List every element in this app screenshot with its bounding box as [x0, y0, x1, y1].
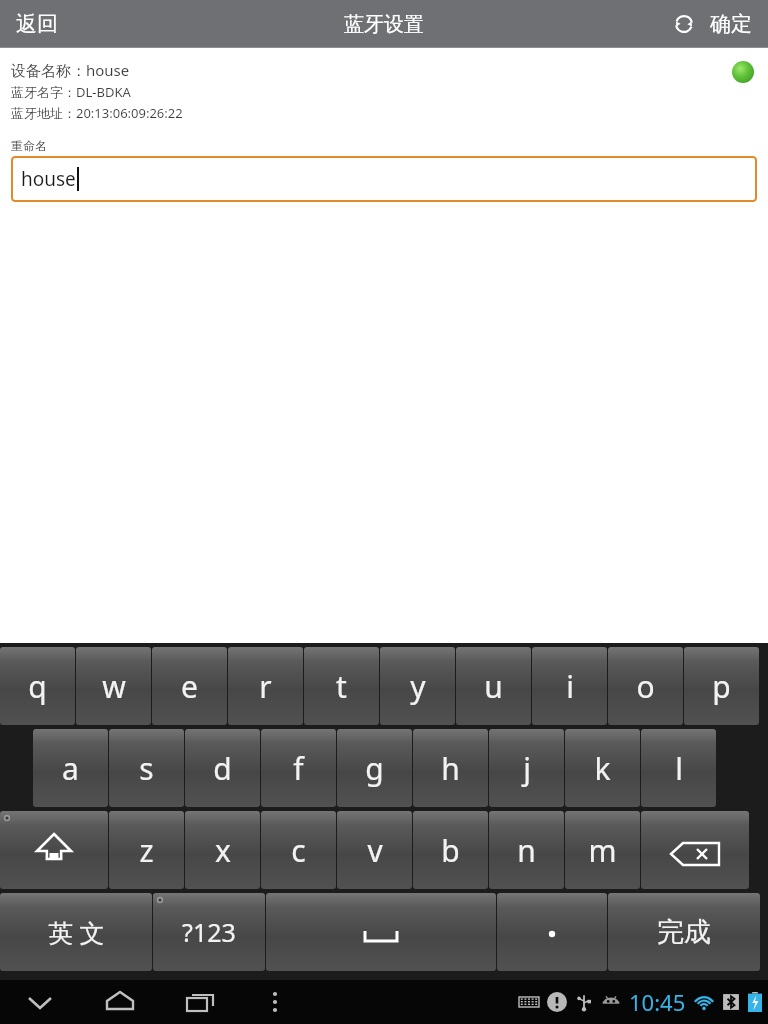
- button[interactable]: d: [185, 729, 260, 807]
- staticText: x: [215, 830, 231, 871]
- staticText: e: [181, 666, 198, 707]
- staticText: a: [62, 748, 79, 789]
- button[interactable]: m: [565, 811, 640, 889]
- button[interactable]: 返回: [0, 0, 120, 48]
- staticText: m: [588, 830, 617, 871]
- staticText: 重命名: [11, 138, 47, 153]
- button[interactable]: l: [641, 729, 716, 807]
- staticText: ?123: [182, 915, 236, 949]
- button[interactable]: 确定: [706, 0, 768, 48]
- button[interactable]: e: [152, 647, 227, 725]
- button[interactable]: z: [109, 811, 184, 889]
- button[interactable]: b: [413, 811, 488, 889]
- button[interactable]: r: [228, 647, 303, 725]
- button[interactable]: Delete: [641, 811, 749, 889]
- staticText: j: [523, 748, 531, 789]
- staticText: n: [517, 830, 536, 871]
- button[interactable]: Recent apps: [160, 980, 240, 1024]
- button[interactable]: n: [489, 811, 564, 889]
- staticText: l: [675, 748, 683, 789]
- staticText: d: [213, 748, 232, 789]
- staticText: o: [636, 666, 655, 707]
- staticText: 确定: [710, 11, 752, 37]
- staticText: r: [259, 666, 272, 707]
- staticText: i: [566, 666, 574, 707]
- staticText: w: [102, 666, 126, 707]
- staticText: 蓝牙地址：20:13:06:09:26:22: [11, 104, 183, 122]
- button[interactable]: f: [261, 729, 336, 807]
- staticText: 蓝牙名字：DL-BDKA: [11, 83, 131, 101]
- button[interactable]: y: [380, 647, 455, 725]
- staticText: b: [441, 830, 460, 871]
- staticText: 设备名称：house: [11, 60, 130, 80]
- button[interactable]: o: [608, 647, 683, 725]
- button[interactable]: q: [0, 647, 75, 725]
- button[interactable]: 英 文: [0, 893, 152, 971]
- staticText: p: [712, 666, 731, 707]
- button[interactable]: a: [33, 729, 108, 807]
- button[interactable]: j: [489, 729, 564, 807]
- staticText: 蓝牙设置: [344, 12, 424, 37]
- staticText: v: [367, 830, 383, 871]
- button[interactable]: h: [413, 729, 488, 807]
- staticText: house: [21, 166, 76, 192]
- staticText: y: [410, 666, 426, 707]
- staticText: c: [291, 830, 306, 871]
- staticText: h: [441, 748, 460, 789]
- button[interactable]: x: [185, 811, 260, 889]
- button[interactable]: v: [337, 811, 412, 889]
- staticText: 完成: [657, 915, 711, 949]
- staticText: k: [594, 748, 611, 789]
- staticText: u: [484, 666, 503, 707]
- button[interactable]: Home: [80, 980, 160, 1024]
- button[interactable]: Space: [266, 893, 496, 971]
- staticText: t: [336, 666, 347, 707]
- button[interactable]: Hide keyboard: [0, 980, 80, 1024]
- button[interactable]: 完成: [608, 893, 760, 971]
- button[interactable]: u: [456, 647, 531, 725]
- button[interactable]: house: [11, 156, 757, 202]
- staticText: 英 文: [48, 915, 105, 949]
- staticText: z: [139, 830, 154, 871]
- button[interactable]: c: [261, 811, 336, 889]
- staticText: g: [365, 748, 384, 789]
- staticText: f: [293, 748, 304, 789]
- button[interactable]: More options: [240, 980, 310, 1024]
- button[interactable]: Refresh: [662, 2, 706, 46]
- button[interactable]: s: [109, 729, 184, 807]
- button[interactable]: Period: [497, 893, 607, 971]
- button[interactable]: k: [565, 729, 640, 807]
- button[interactable]: i: [532, 647, 607, 725]
- button[interactable]: g: [337, 729, 412, 807]
- button[interactable]: p: [684, 647, 759, 725]
- button[interactable]: Shift: [0, 811, 108, 889]
- staticText: 10:45: [629, 987, 686, 1017]
- staticText: s: [139, 748, 154, 789]
- staticText: q: [28, 666, 47, 707]
- button[interactable]: w: [76, 647, 151, 725]
- button[interactable]: ?123: [153, 893, 265, 971]
- button[interactable]: t: [304, 647, 379, 725]
- staticText: 返回: [16, 11, 58, 37]
